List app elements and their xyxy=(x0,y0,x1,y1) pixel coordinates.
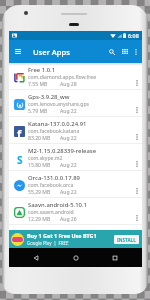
button[interactable]: Home xyxy=(64,248,88,267)
button[interactable]: Back xyxy=(24,248,48,267)
button[interactable]: INSTALL xyxy=(114,235,139,244)
staticText: M2-1.15.0.28339-release xyxy=(28,147,97,155)
staticText: 5.79 MB xyxy=(28,108,48,115)
button[interactable]: Item options xyxy=(131,63,142,90)
button[interactable]: Orca-131.0.0.17.89 xyxy=(9,171,142,198)
staticText: Aug 22 xyxy=(60,189,77,196)
staticText: 15.80 MB xyxy=(28,162,51,169)
button[interactable]: Free 1.0.1 xyxy=(9,63,142,90)
staticText: 83.20 MB xyxy=(28,135,51,142)
button[interactable]: Item options xyxy=(131,90,142,117)
staticText: Aug 22 xyxy=(60,162,77,169)
staticText: Buy 1 Get 1 Free Use BTG1 xyxy=(27,232,97,239)
button[interactable]: f xyxy=(9,117,142,144)
button[interactable]: Item options xyxy=(131,198,142,225)
button[interactable]: Recent apps xyxy=(103,248,127,267)
button[interactable]: S xyxy=(9,144,142,171)
staticText: Aug 22 xyxy=(60,108,77,115)
staticText: f xyxy=(17,126,22,137)
staticText: 12.29 MB xyxy=(28,216,51,223)
staticText: 7.55 MB xyxy=(28,81,48,88)
staticText: com.diamond.apps.flow.free xyxy=(28,74,97,81)
staticText: com.saavn.android xyxy=(28,209,74,216)
button[interactable]: Open navigation drawer xyxy=(9,40,27,63)
staticText: Saavn.android-5.10.1 xyxy=(28,201,87,209)
staticText: Google Play | FREE xyxy=(27,240,69,246)
staticText: Aug 28 xyxy=(60,81,77,88)
staticText: 55.29 MB xyxy=(28,189,51,196)
staticText: Free 1.0.1 xyxy=(28,66,56,74)
button[interactable]: Saavn.android-5.10.1 xyxy=(9,198,142,225)
staticText: User Apps xyxy=(33,47,70,57)
staticText: Katana-137.0.0.24.91 xyxy=(28,120,87,128)
button[interactable]: Item options xyxy=(131,117,142,144)
button[interactable]: Item options xyxy=(131,144,142,171)
button[interactable]: Gps-3.9.28_ww xyxy=(9,90,142,117)
staticText: S xyxy=(17,153,23,164)
staticText: com.facebook.orca xyxy=(28,182,74,189)
staticText: Aug 22 xyxy=(60,135,77,142)
button[interactable]: Search xyxy=(105,40,118,63)
staticText: com.facebook.katana xyxy=(28,128,80,135)
staticText: Gps-3.9.28_ww xyxy=(28,93,70,101)
button[interactable]: Item options xyxy=(131,171,142,198)
staticText: com.lenovo.anyshare.gps xyxy=(28,101,89,108)
staticText: Orca-131.0.0.17.89 xyxy=(28,174,80,182)
staticText: com.skype.m2 xyxy=(28,155,63,162)
button[interactable]: Grid view xyxy=(118,40,131,63)
staticText: Aug 26 xyxy=(60,216,77,223)
staticText: 6:08 xyxy=(128,32,139,39)
staticText: INSTALL xyxy=(117,237,136,243)
button[interactable]: More options xyxy=(131,40,141,63)
